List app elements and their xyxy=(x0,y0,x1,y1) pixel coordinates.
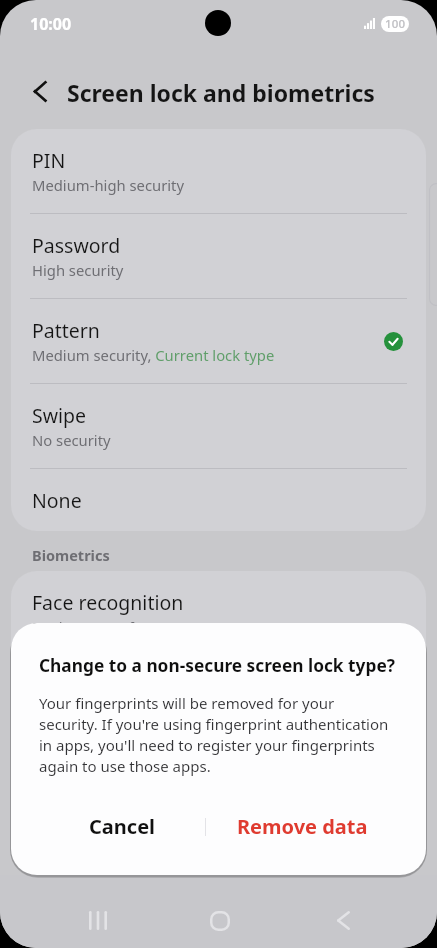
button[interactable]: Pattern xyxy=(11,299,426,383)
staticText: High security xyxy=(32,260,124,280)
staticText: Fingerprints xyxy=(32,674,144,701)
staticText: PIN xyxy=(32,147,66,174)
staticText: No security xyxy=(32,430,111,450)
button[interactable]: Remove data xyxy=(206,801,399,851)
button[interactable]: Home xyxy=(190,898,250,943)
button[interactable]: PIN xyxy=(11,129,426,213)
staticText: Cancel xyxy=(89,813,156,840)
staticText: Register your face xyxy=(32,617,158,637)
staticText: Register fingerprints xyxy=(32,702,176,722)
staticText: Medium security, Current lock type xyxy=(32,345,275,365)
button[interactable]: Cancel xyxy=(39,801,205,851)
button[interactable]: Fingerprints xyxy=(11,656,426,740)
staticText: Password xyxy=(32,232,121,259)
button[interactable]: Recent apps xyxy=(68,898,128,943)
staticText: Remove data xyxy=(237,813,368,840)
button[interactable]: Back xyxy=(313,898,373,943)
staticText: Your fingerprints will be removed for yo… xyxy=(39,693,391,777)
button[interactable]: Back xyxy=(22,73,58,109)
button[interactable]: None xyxy=(11,469,426,531)
staticText: Biometrics xyxy=(32,545,110,565)
staticText: 100 xyxy=(385,16,406,32)
staticText: Face recognition xyxy=(32,589,184,616)
button[interactable]: Password xyxy=(11,214,426,298)
staticText: Screen lock and biometrics xyxy=(67,77,375,108)
staticText: 10:00 xyxy=(30,13,72,35)
staticText: Swipe xyxy=(32,402,87,429)
button[interactable]: Face recognition xyxy=(11,571,426,655)
button[interactable]: Swipe xyxy=(11,384,426,468)
staticText: Change to a non-secure screen lock type? xyxy=(39,654,395,678)
staticText: Pattern xyxy=(32,317,100,344)
staticText: Medium-high security xyxy=(32,175,184,195)
staticText: None xyxy=(32,487,82,514)
